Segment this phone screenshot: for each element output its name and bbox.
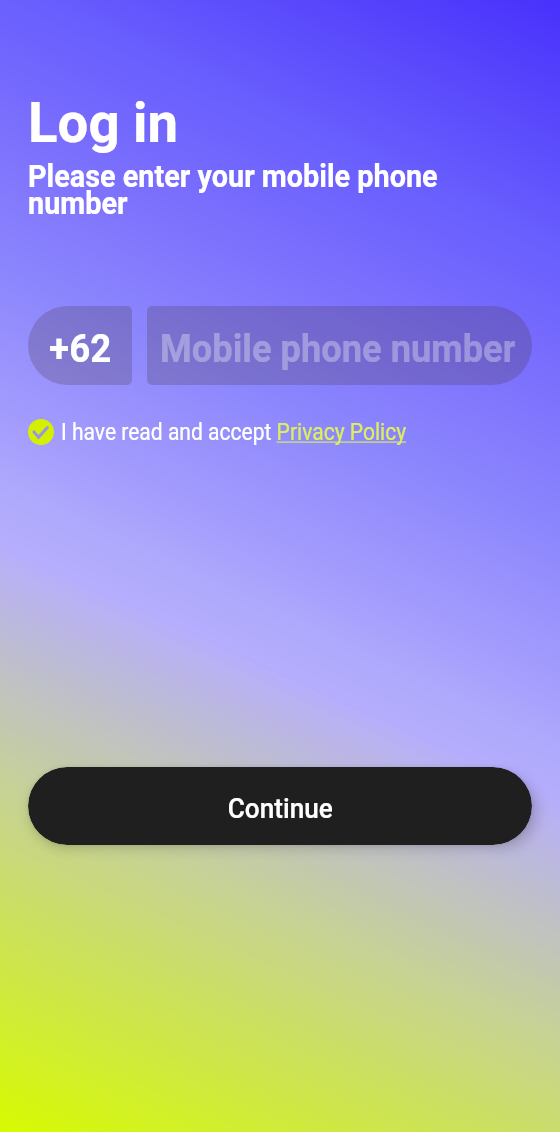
button[interactable]: Accepted (28, 419, 439, 445)
staticText: Log in (28, 90, 179, 156)
staticText: number (28, 184, 128, 222)
button[interactable]: Mobile phone number (147, 306, 532, 385)
staticText: Mobile phone number (160, 327, 515, 372)
other: Accepted (28, 419, 54, 445)
button[interactable]: +62 (28, 306, 132, 385)
button[interactable]: Continue (28, 767, 532, 845)
staticText: I have read and accept Privacy Policy (61, 419, 407, 445)
staticText: Continue (228, 793, 333, 825)
staticText: Please enter your mobile phone (28, 157, 438, 195)
staticText: +62 (49, 327, 112, 372)
